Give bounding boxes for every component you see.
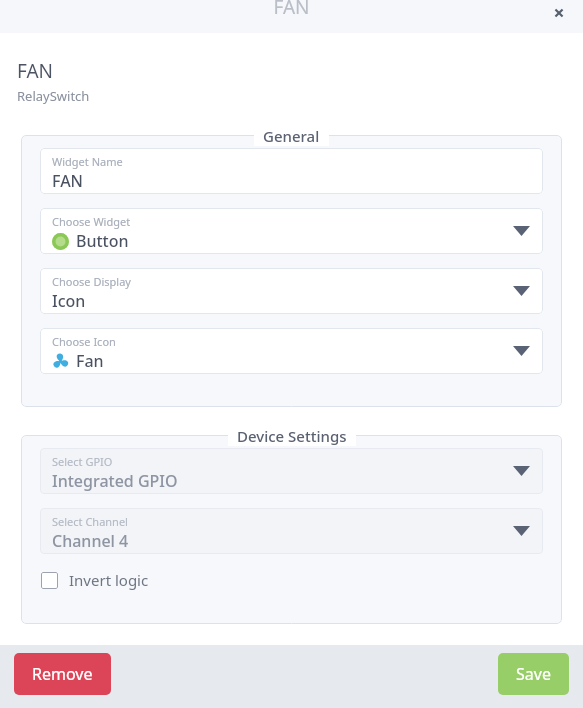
button[interactable]: Select Channel	[40, 508, 543, 554]
button[interactable]: Save	[498, 653, 569, 695]
button[interactable]: Choose Icon	[40, 328, 543, 374]
staticText: Choose Icon	[52, 334, 116, 349]
staticText: Select GPIO	[52, 454, 113, 469]
staticText: Channel 4	[52, 530, 129, 552]
staticText: General	[263, 126, 320, 146]
staticText: Integrated GPIO	[52, 470, 178, 492]
staticText: FAN	[17, 58, 54, 84]
button[interactable]: Widget Name	[40, 148, 543, 194]
button[interactable]: Close	[543, 0, 575, 29]
staticText: Widget Name	[52, 154, 123, 169]
staticText: Choose Widget	[52, 214, 131, 229]
staticText: Save	[516, 663, 551, 685]
staticText: FAN	[0, 0, 583, 20]
staticText: Select Channel	[52, 514, 128, 529]
button[interactable]: Select GPIO	[40, 448, 543, 494]
staticText: Choose Display	[52, 274, 131, 289]
staticText: Device Settings	[237, 426, 347, 446]
staticText: Icon	[52, 290, 86, 312]
staticText: Button	[76, 230, 129, 252]
staticText: Remove	[32, 663, 93, 685]
staticText: RelaySwitch	[17, 87, 90, 105]
staticText: Fan	[76, 350, 104, 372]
staticText: FAN	[52, 170, 84, 192]
staticText: Invert logic	[69, 570, 149, 590]
button[interactable]: Choose Widget	[40, 208, 543, 254]
button[interactable]: Invert logic	[41, 570, 149, 590]
button[interactable]: Remove	[14, 653, 111, 695]
button[interactable]: Choose Display	[40, 268, 543, 314]
